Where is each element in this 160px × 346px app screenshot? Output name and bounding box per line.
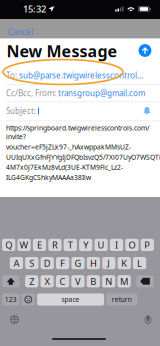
button[interactable]: R xyxy=(48,239,61,251)
button[interactable]: B xyxy=(87,275,100,287)
button[interactable]: X xyxy=(40,275,54,287)
button[interactable]: C xyxy=(56,275,69,287)
button[interactable]: Q xyxy=(2,239,15,251)
button[interactable]: A xyxy=(10,257,23,269)
staticText: B xyxy=(90,275,96,287)
button[interactable]: Y xyxy=(79,239,92,251)
staticText: 4M7x0J7EkMz8vLd(3UE-KTM9Flc_Lz2- xyxy=(6,163,123,172)
button[interactable]: I xyxy=(110,239,123,251)
staticText: F xyxy=(60,257,65,269)
button[interactable]: Notify me xyxy=(143,106,151,115)
staticText: New Message xyxy=(6,40,117,62)
button[interactable]: G xyxy=(71,257,85,269)
button[interactable]: E xyxy=(33,239,46,251)
staticText: G xyxy=(74,257,81,269)
button[interactable]: return xyxy=(106,293,137,306)
staticText: I xyxy=(115,239,118,251)
button[interactable]: U xyxy=(94,239,108,251)
staticText: M xyxy=(120,275,128,287)
staticText: transgroup@gmail.com xyxy=(58,88,145,98)
staticText: J xyxy=(107,257,110,269)
staticText: Subject: xyxy=(6,106,36,116)
button[interactable]: D xyxy=(41,257,54,269)
button[interactable]: W xyxy=(17,239,31,251)
staticText: D xyxy=(44,257,51,269)
button[interactable]: L xyxy=(133,257,146,269)
button[interactable]: Dictate xyxy=(144,314,152,325)
staticText: UUIqUXxGfnFJYYgIjDFQbIsvzQ5/7Xl07UyO7WSQ… xyxy=(6,153,160,162)
staticText: W xyxy=(20,239,29,251)
staticText: sub@parse.twigwirelesscontrols.com xyxy=(19,70,146,81)
button[interactable]: T xyxy=(64,239,77,251)
staticText: Cancel xyxy=(8,27,33,37)
staticText: Y xyxy=(83,239,88,251)
staticText: U xyxy=(98,239,105,251)
staticText: Z xyxy=(29,275,34,287)
staticText: T xyxy=(68,239,73,251)
button[interactable]: H xyxy=(87,257,100,269)
staticText: K xyxy=(121,257,127,269)
button[interactable]: J xyxy=(102,257,115,269)
button[interactable]: S xyxy=(25,257,38,269)
staticText: A xyxy=(13,257,19,269)
staticText: S xyxy=(29,257,34,269)
staticText: R xyxy=(52,239,58,251)
button[interactable]: Next keyboard xyxy=(10,315,19,324)
staticText: P xyxy=(144,239,150,251)
staticText: O xyxy=(128,239,135,251)
staticText: https://springboard.twigwirelesscontrols… xyxy=(6,123,149,141)
button[interactable]: Subject: xyxy=(6,101,136,120)
button[interactable]: Cancel xyxy=(0,19,34,31)
button[interactable]: Send xyxy=(136,41,154,59)
staticText: L xyxy=(137,257,142,269)
button[interactable] xyxy=(136,275,154,287)
staticText: space xyxy=(62,295,80,304)
button[interactable]: N xyxy=(102,275,115,287)
button[interactable]: To: xyxy=(6,67,154,84)
staticText: C xyxy=(59,275,65,287)
button[interactable]: space xyxy=(37,293,104,306)
staticText: E xyxy=(37,239,42,251)
button[interactable]: M xyxy=(117,275,131,287)
staticText: V xyxy=(75,275,81,287)
staticText: X xyxy=(45,275,50,287)
staticText: 15:32 xyxy=(23,3,46,15)
button[interactable] xyxy=(2,275,19,287)
button[interactable] xyxy=(22,293,35,306)
button[interactable]: Cc/Bcc, From: xyxy=(6,85,154,102)
button[interactable]: Z xyxy=(25,275,38,287)
staticText: Q xyxy=(5,239,12,251)
staticText: ILG4GKgCShkyMAAAa38Ilw xyxy=(6,173,91,182)
staticText: return xyxy=(112,295,132,304)
button[interactable]: O xyxy=(125,239,138,251)
staticText: voucher=eF5jZLk97-_hAxwppakMMsUZ- xyxy=(6,142,131,151)
staticText: H xyxy=(90,257,97,269)
staticText: N xyxy=(105,275,112,287)
staticText: To: xyxy=(6,70,17,81)
staticText: Cc/Bcc, From: xyxy=(6,88,56,98)
button[interactable]: F xyxy=(56,257,69,269)
staticText: 123 xyxy=(5,295,17,304)
button[interactable]: K xyxy=(118,257,131,269)
button[interactable]: V xyxy=(71,275,84,287)
button[interactable]: 123 xyxy=(2,293,19,306)
button[interactable]: P xyxy=(141,239,154,251)
